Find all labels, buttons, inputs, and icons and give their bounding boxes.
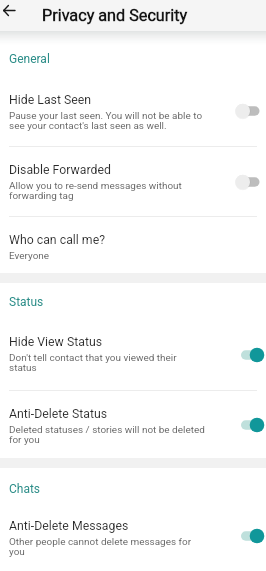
button[interactable]: Anti-Delete Status — [0, 391, 266, 458]
staticText: Pause your last seen. You will not be ab… — [9, 110, 206, 132]
staticText: Everyone — [9, 250, 50, 262]
button[interactable]: Hide View Status — [0, 319, 266, 390]
staticText: Allow you to re-send messages without fo… — [9, 180, 206, 202]
staticText: Privacy and Security — [42, 6, 188, 25]
staticText: Who can call me? — [9, 233, 105, 247]
staticText: Deleted statuses / stories will not be d… — [9, 424, 206, 446]
staticText: Anti-Delete Messages — [9, 519, 129, 533]
staticText: Don't tell contact that you viewed their… — [9, 352, 206, 374]
button[interactable]: General — [0, 36, 266, 76]
button[interactable]: Switch on — [235, 346, 265, 364]
button[interactable]: Switch on — [235, 527, 265, 545]
staticText: Hide Last Seen — [9, 93, 92, 107]
button[interactable]: Back — [0, 0, 30, 31]
staticText: Anti-Delete Status — [9, 407, 108, 421]
button[interactable]: Disable Forwarded — [0, 147, 266, 216]
button[interactable]: Who can call me? — [0, 217, 266, 273]
button[interactable]: Switch off — [235, 102, 265, 120]
staticText: Chats — [9, 482, 41, 496]
button[interactable]: Switch on — [235, 416, 265, 434]
button[interactable]: Chats — [0, 468, 266, 503]
button[interactable]: Hide Last Seen — [0, 76, 266, 146]
staticText: Disable Forwarded — [9, 163, 111, 177]
staticText: Status — [9, 295, 44, 309]
button[interactable]: Anti-Delete Messages — [0, 503, 266, 569]
staticText: Other people cannot delete messages for … — [9, 536, 206, 558]
button[interactable]: Status — [0, 283, 266, 319]
button[interactable]: Switch off — [235, 173, 265, 191]
staticText: General — [9, 52, 50, 66]
staticText: Hide View Status — [9, 335, 103, 349]
